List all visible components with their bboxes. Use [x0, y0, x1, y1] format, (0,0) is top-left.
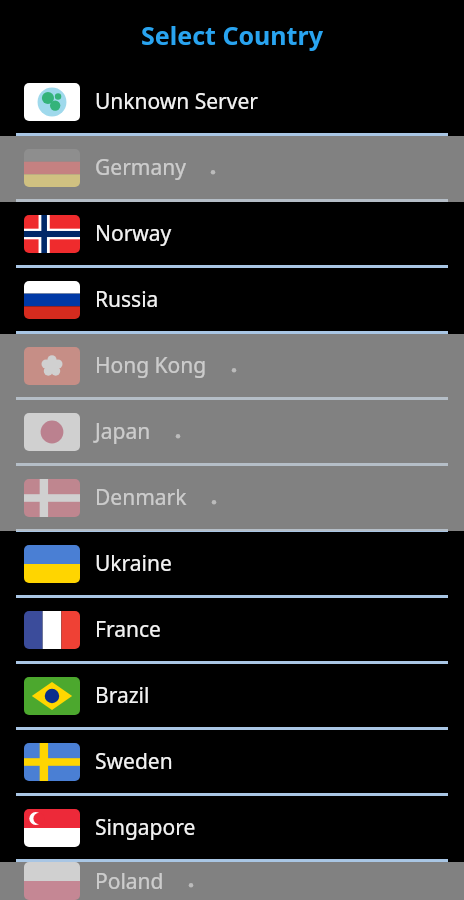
- staticText: Norway: [95, 219, 172, 248]
- button[interactable]: Hong Kong: [0, 334, 464, 397]
- staticText: Japan: [95, 417, 151, 446]
- button[interactable]: Singapore: [0, 796, 464, 859]
- staticText: Germany: [95, 153, 186, 182]
- button[interactable]: Norway: [0, 202, 464, 265]
- button[interactable]: Brazil: [0, 664, 464, 727]
- staticText: Sweden: [95, 747, 173, 776]
- other: Locked: [161, 415, 195, 449]
- button[interactable]: Russia: [0, 268, 464, 331]
- staticText: Select Country: [141, 18, 323, 52]
- button[interactable]: France: [0, 598, 464, 661]
- other: Locked: [196, 151, 230, 185]
- staticText: Ukraine: [95, 549, 172, 578]
- button[interactable]: Denmark: [0, 466, 464, 529]
- button[interactable]: Germany: [0, 136, 464, 199]
- staticText: Russia: [95, 285, 159, 314]
- button[interactable]: Japan: [0, 400, 464, 463]
- button[interactable]: Ukraine: [0, 532, 464, 595]
- staticText: France: [95, 615, 161, 644]
- staticText: Unknown Server: [95, 87, 258, 116]
- button[interactable]: Poland: [0, 862, 464, 900]
- staticText: Brazil: [95, 681, 150, 710]
- staticText: Hong Kong: [95, 351, 207, 380]
- button[interactable]: Unknown Server: [0, 70, 464, 133]
- button[interactable]: Sweden: [0, 730, 464, 793]
- other: Locked: [174, 864, 208, 898]
- staticText: Singapore: [95, 813, 196, 842]
- other: Locked: [217, 349, 251, 383]
- other: Locked: [197, 481, 231, 515]
- staticText: Poland: [95, 867, 164, 896]
- staticText: Denmark: [95, 483, 187, 512]
